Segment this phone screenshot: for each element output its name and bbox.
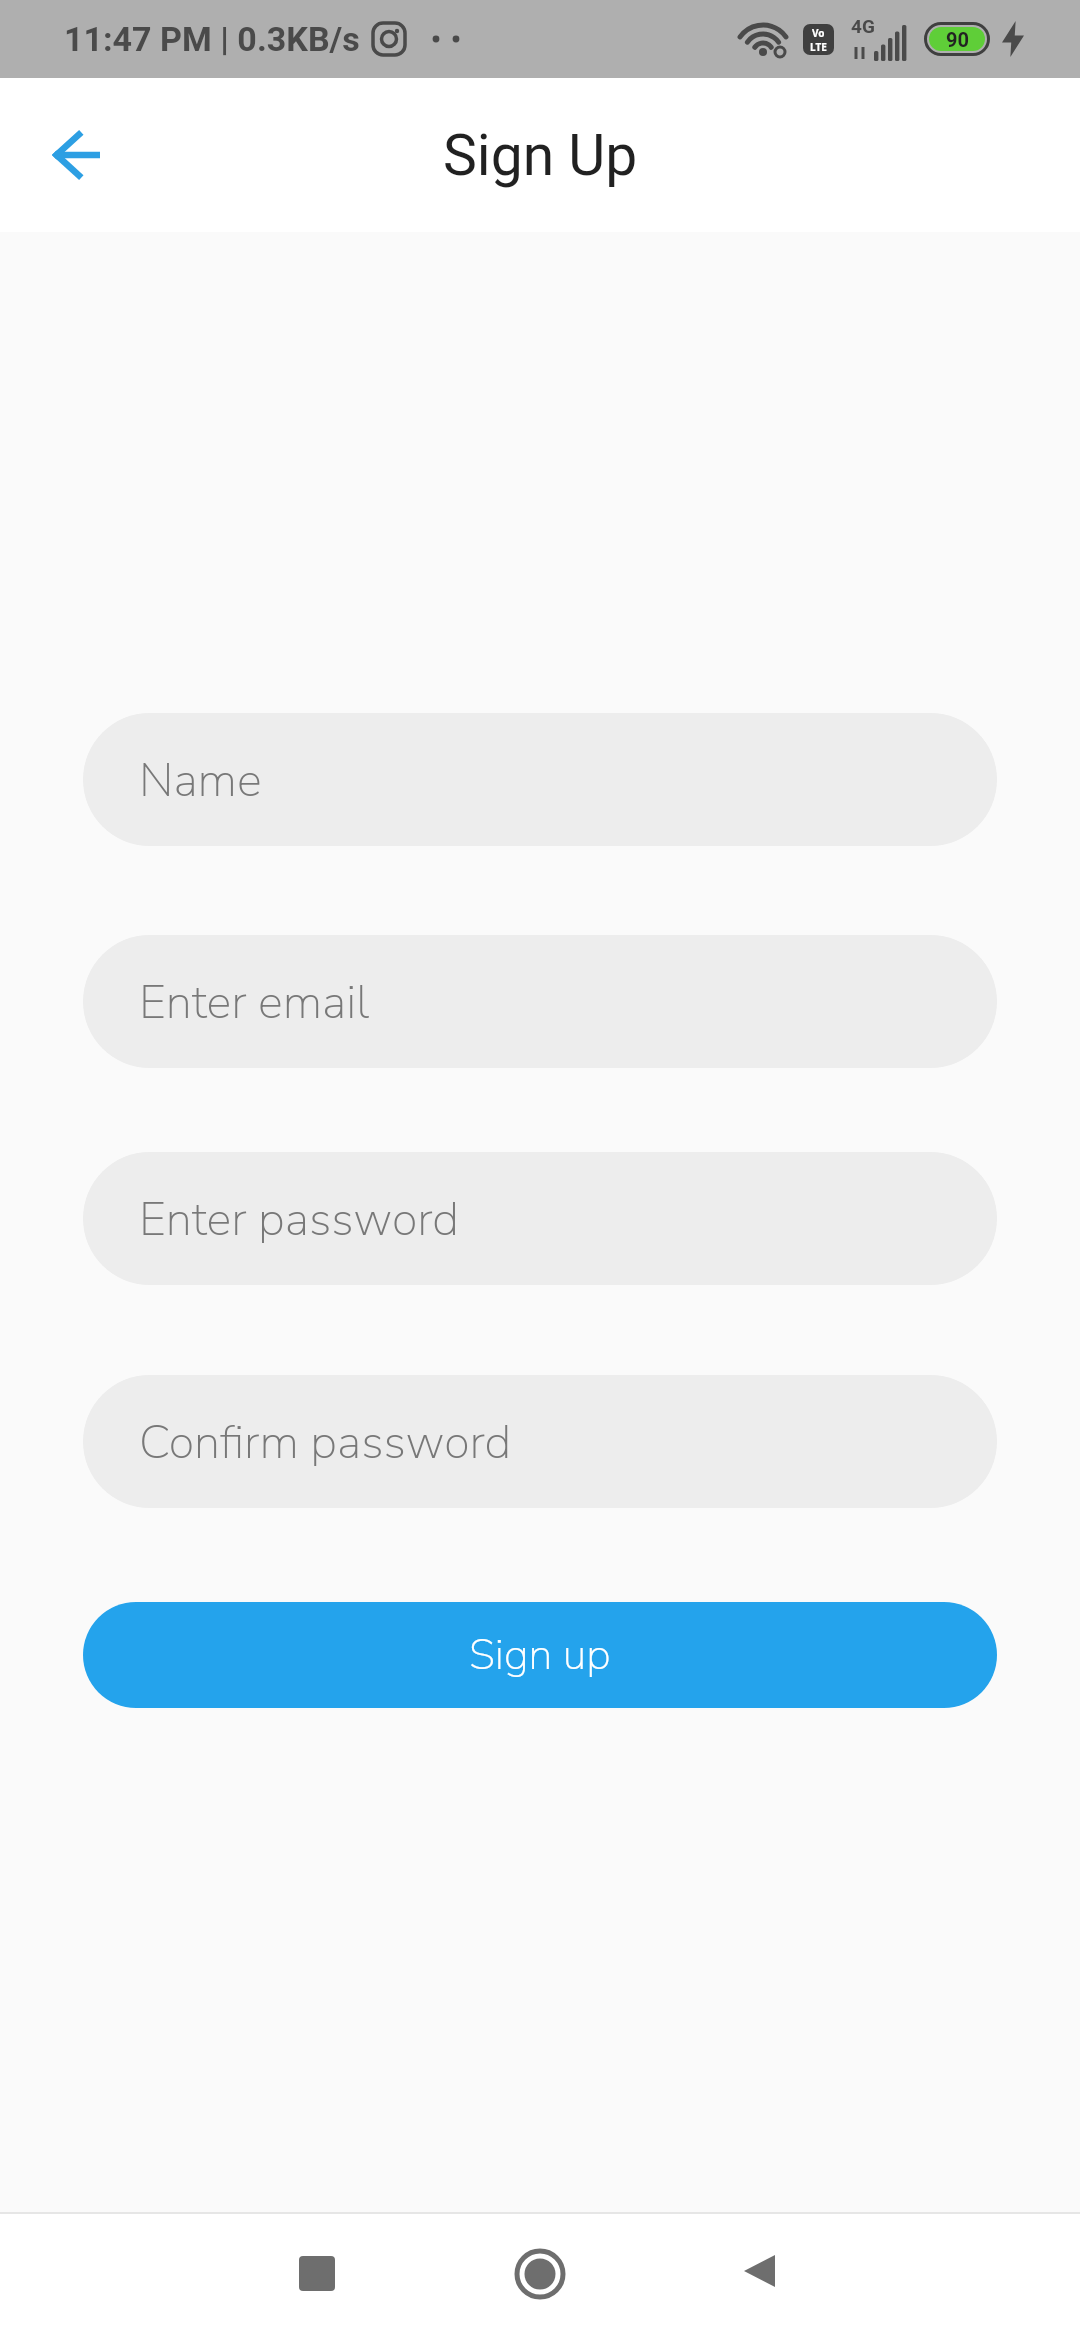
staticText: Vo xyxy=(812,26,825,40)
staticText: Enter email xyxy=(139,970,370,1034)
button[interactable] xyxy=(40,117,116,193)
button[interactable]: Confirm password xyxy=(83,1375,997,1508)
staticText: Enter password xyxy=(139,1187,460,1251)
staticText: LTE xyxy=(810,40,827,54)
staticText: Name xyxy=(139,748,262,812)
button[interactable] xyxy=(299,2256,337,2294)
button[interactable]: Enter password xyxy=(83,1152,997,1285)
button[interactable] xyxy=(742,2254,778,2290)
button[interactable]: Name xyxy=(83,713,997,846)
button[interactable]: Sign up xyxy=(83,1602,997,1708)
staticText: 11:47 PM | 0.3KB/s xyxy=(64,19,360,59)
button[interactable]: Enter email xyxy=(83,935,997,1068)
staticText: Confirm password xyxy=(139,1410,512,1474)
staticText: 4G xyxy=(851,15,875,37)
staticText: 90 xyxy=(946,28,969,51)
staticText: Sign Up xyxy=(443,122,638,189)
button[interactable] xyxy=(514,2248,566,2300)
staticText: Sign up xyxy=(469,1626,611,1685)
